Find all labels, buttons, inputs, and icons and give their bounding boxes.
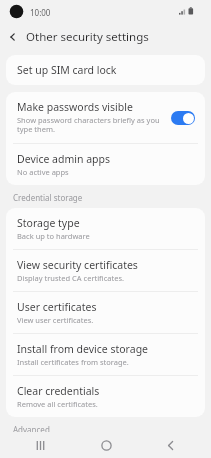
staticText: View security certificates xyxy=(17,258,138,272)
staticText: Make passwords visible xyxy=(17,100,133,114)
button[interactable]: View security certificates xyxy=(6,250,205,291)
staticText: Display trusted CA certificates. xyxy=(17,273,124,283)
button[interactable]: Trust agents xyxy=(6,440,205,458)
button[interactable]: User certificates xyxy=(6,292,205,333)
button[interactable]: Make passwords visible xyxy=(171,111,195,125)
staticText: Other security settings xyxy=(26,29,149,45)
staticText: 10:00 xyxy=(30,7,51,18)
button[interactable]: Install from device storage xyxy=(6,334,205,375)
staticText: Set up SIM card lock xyxy=(17,63,117,77)
staticText: Storage type xyxy=(17,216,80,230)
staticText: View user certificates. xyxy=(17,315,94,325)
staticText: Device admin apps xyxy=(17,152,111,166)
staticText: Trust agents xyxy=(17,448,79,450)
staticText: Credential storage xyxy=(13,192,83,203)
staticText: No active apps xyxy=(17,167,69,177)
staticText: Show password characters briefly as you … xyxy=(17,115,165,135)
button[interactable]: Home xyxy=(81,432,131,458)
staticText: Remove all certificates. xyxy=(17,399,98,409)
staticText: User certificates xyxy=(17,300,97,314)
button[interactable]: Device admin apps xyxy=(6,144,205,185)
staticText: Back up to hardware xyxy=(17,231,90,241)
button[interactable]: Make passwords visible xyxy=(6,92,205,143)
button[interactable]: Storage type xyxy=(6,208,205,249)
button[interactable]: Set up SIM card lock xyxy=(6,55,205,85)
button[interactable]: Back xyxy=(146,432,196,458)
staticText: Install from device storage xyxy=(17,342,149,356)
staticText: Clear credentials xyxy=(17,384,100,398)
staticText: Install certificates from storage. xyxy=(17,357,129,367)
staticText: Advanced xyxy=(13,424,50,435)
button[interactable]: Back xyxy=(0,24,26,49)
button[interactable]: Recents xyxy=(15,432,65,458)
button[interactable]: Clear credentials xyxy=(6,376,205,417)
